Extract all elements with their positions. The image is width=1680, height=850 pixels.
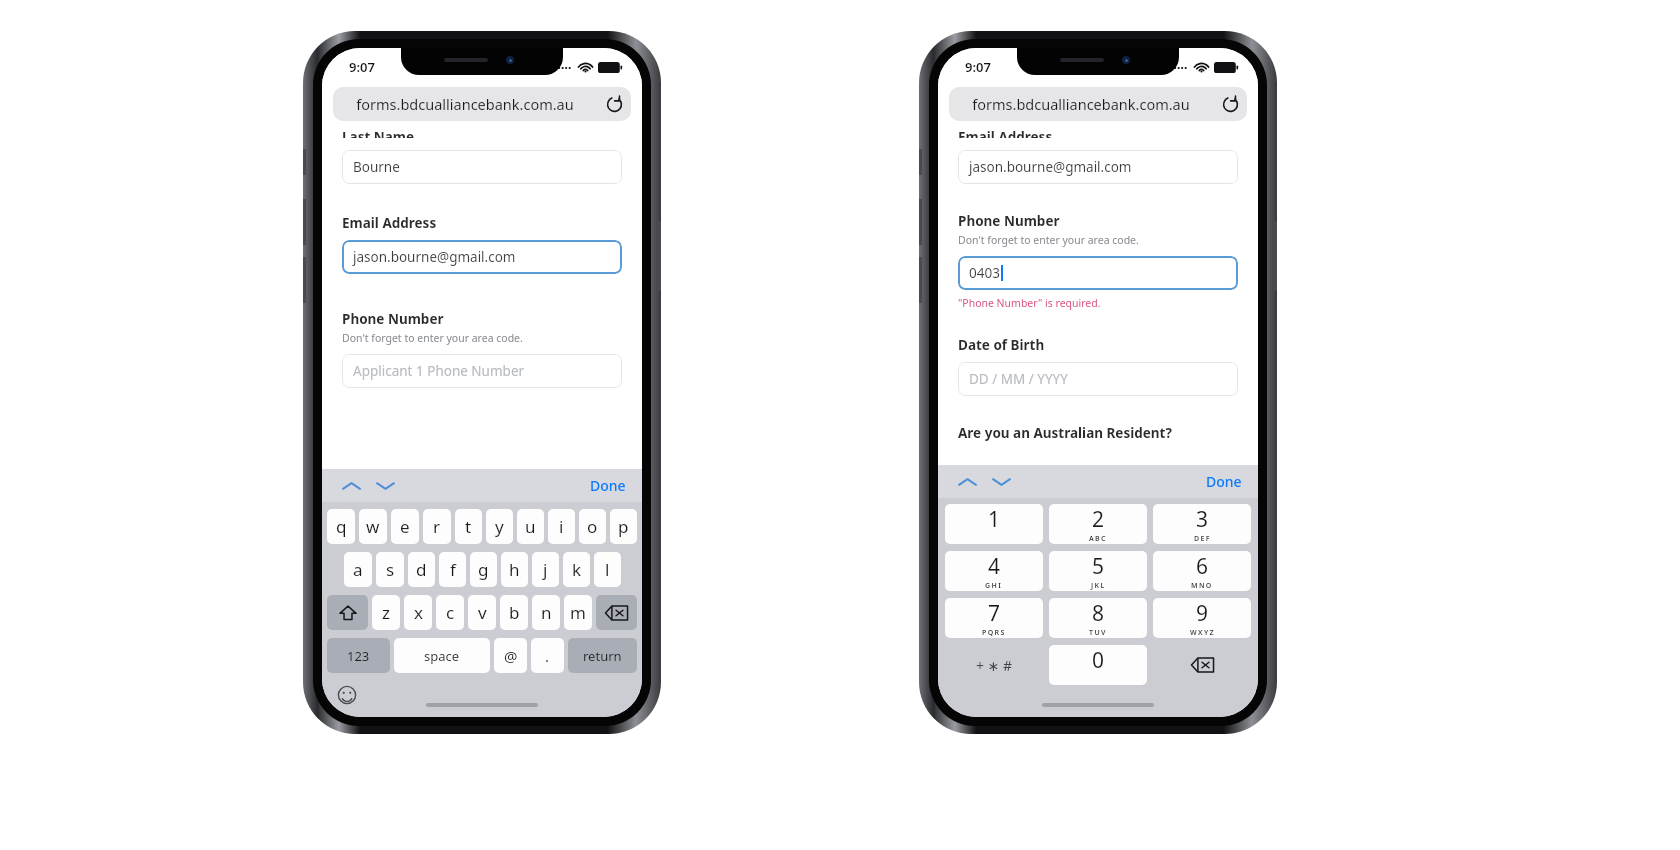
button[interactable]: r xyxy=(423,509,451,544)
staticText: 3 xyxy=(1196,505,1209,534)
button[interactable]: Previous field xyxy=(336,471,366,501)
button[interactable]: Applicant 1 Phone Number xyxy=(342,354,622,388)
button[interactable]: 5 xyxy=(1049,551,1147,591)
button[interactable]: 0403 xyxy=(958,256,1238,290)
button[interactable]: u xyxy=(517,509,544,544)
button[interactable]: forms.bdcualliancebank.com.au xyxy=(333,87,631,121)
staticText: JKL xyxy=(1091,581,1106,591)
staticText: forms.bdcualliancebank.com.au xyxy=(356,94,574,114)
button[interactable]: . xyxy=(531,638,564,673)
button[interactable]: z xyxy=(372,595,400,630)
staticText: 8 xyxy=(1092,599,1105,628)
button[interactable]: y xyxy=(486,509,513,544)
staticText: jason.bourne@gmail.com xyxy=(969,158,1132,176)
staticText: a xyxy=(353,558,363,581)
button[interactable]: DD / MM / YYYY xyxy=(958,362,1238,396)
button[interactable]: b xyxy=(500,595,528,630)
button[interactable]: g xyxy=(470,552,497,587)
button[interactable]: Shift xyxy=(327,595,368,630)
button[interactable]: s xyxy=(376,552,404,587)
button[interactable]: 2 xyxy=(1049,504,1147,544)
staticText: + ∗ # xyxy=(976,656,1013,675)
staticText: z xyxy=(382,601,390,624)
staticText: forms.bdcualliancebank.com.au xyxy=(972,94,1190,114)
staticText: q xyxy=(336,515,347,538)
button[interactable]: e xyxy=(391,509,419,544)
staticText: i xyxy=(559,515,564,538)
button[interactable]: n xyxy=(532,595,560,630)
staticText: o xyxy=(587,515,598,538)
button[interactable]: w xyxy=(359,509,387,544)
staticText: j xyxy=(543,558,548,581)
button[interactable]: p xyxy=(610,509,637,544)
button[interactable]: x xyxy=(404,595,432,630)
button[interactable]: v xyxy=(468,595,496,630)
button[interactable]: l xyxy=(594,552,621,587)
staticText: Email Address xyxy=(958,128,1053,138)
button[interactable]: Next field xyxy=(986,467,1016,497)
staticText: DD / MM / YYYY xyxy=(969,370,1068,388)
button[interactable]: space xyxy=(394,638,490,673)
button[interactable]: jason.bourne@gmail.com xyxy=(342,240,622,274)
button[interactable]: Done xyxy=(1200,468,1248,495)
staticText: w xyxy=(366,515,380,538)
button[interactable]: f xyxy=(439,552,466,587)
staticText: TUV xyxy=(1089,628,1107,638)
staticText: e xyxy=(400,515,410,538)
staticText: 0 xyxy=(1092,646,1105,675)
button[interactable]: @ xyxy=(494,638,527,673)
button[interactable]: 7 xyxy=(945,598,1043,638)
button[interactable]: 9 xyxy=(1153,598,1251,638)
staticText: u xyxy=(525,515,536,538)
staticText: p xyxy=(618,515,629,538)
staticText: space xyxy=(424,647,460,665)
staticText: 1 xyxy=(988,505,1001,534)
staticText: Phone Number xyxy=(342,310,444,328)
staticText: "Phone Number" is required. xyxy=(958,296,1101,310)
staticText: Are you an Australian Resident? xyxy=(958,424,1172,442)
button[interactable]: Next field xyxy=(370,471,400,501)
staticText: 9 xyxy=(1196,599,1209,628)
button[interactable]: Previous field xyxy=(952,467,982,497)
button[interactable]: Reload xyxy=(597,87,631,121)
button[interactable]: Reload xyxy=(1213,87,1247,121)
staticText: @ xyxy=(504,646,518,666)
button[interactable]: m xyxy=(564,595,592,630)
button[interactable]: i xyxy=(548,509,575,544)
staticText: d xyxy=(416,558,427,581)
staticText: 4 xyxy=(988,552,1001,581)
button[interactable]: jason.bourne@gmail.com xyxy=(958,150,1238,184)
button[interactable]: Backspace xyxy=(1153,645,1251,685)
staticText: k xyxy=(572,558,582,581)
button[interactable]: return xyxy=(568,638,637,673)
button[interactable]: j xyxy=(532,552,559,587)
button[interactable]: Bourne xyxy=(342,150,622,184)
button[interactable]: Symbols xyxy=(945,645,1043,685)
button[interactable]: 6 xyxy=(1153,551,1251,591)
button[interactable]: 1 xyxy=(945,504,1043,544)
staticText: . xyxy=(545,646,550,666)
button[interactable]: 0 xyxy=(1049,645,1147,685)
button[interactable]: q xyxy=(327,509,355,544)
button[interactable]: 8 xyxy=(1049,598,1147,638)
button[interactable]: c xyxy=(436,595,464,630)
button[interactable]: 3 xyxy=(1153,504,1251,544)
staticText: Bourne xyxy=(353,158,400,176)
staticText: 123 xyxy=(347,647,370,665)
button[interactable]: o xyxy=(579,509,606,544)
button[interactable]: 4 xyxy=(945,551,1043,591)
button[interactable]: Done xyxy=(584,472,632,499)
button[interactable]: 123 xyxy=(327,638,390,673)
button[interactable]: k xyxy=(563,552,590,587)
staticText: Don't forget to enter your area code. xyxy=(958,233,1139,247)
button[interactable]: forms.bdcualliancebank.com.au xyxy=(949,87,1247,121)
button[interactable]: Emoji xyxy=(336,684,358,706)
staticText: Email Address xyxy=(342,214,437,232)
button[interactable]: Backspace xyxy=(596,595,637,630)
button[interactable]: a xyxy=(344,552,372,587)
button[interactable]: d xyxy=(408,552,435,587)
button[interactable]: t xyxy=(455,509,482,544)
staticText: 2 xyxy=(1092,505,1105,534)
button[interactable]: h xyxy=(501,552,528,587)
staticText: ABC xyxy=(1089,534,1107,544)
